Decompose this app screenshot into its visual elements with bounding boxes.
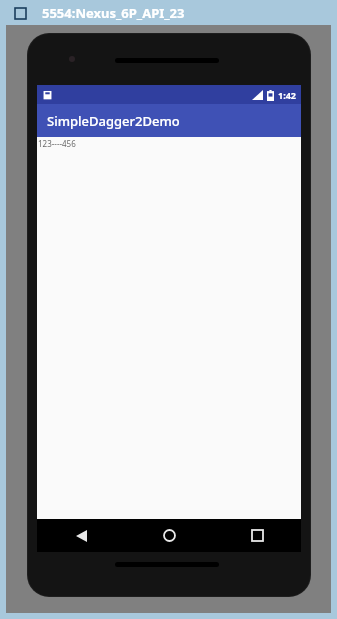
staticText: 5554:Nexus_6P_API_23 [42,4,185,22]
staticText: 123----456 [38,138,76,149]
staticText: 1:42 [278,89,296,101]
button[interactable]: Recent apps [213,519,301,552]
button[interactable]: SimpleDagger2Demo [37,104,301,137]
button[interactable]: Window [12,5,28,21]
staticText: SimpleDagger2Demo [47,112,180,130]
button[interactable]: Back [37,519,125,552]
button[interactable]: Home [125,519,213,552]
